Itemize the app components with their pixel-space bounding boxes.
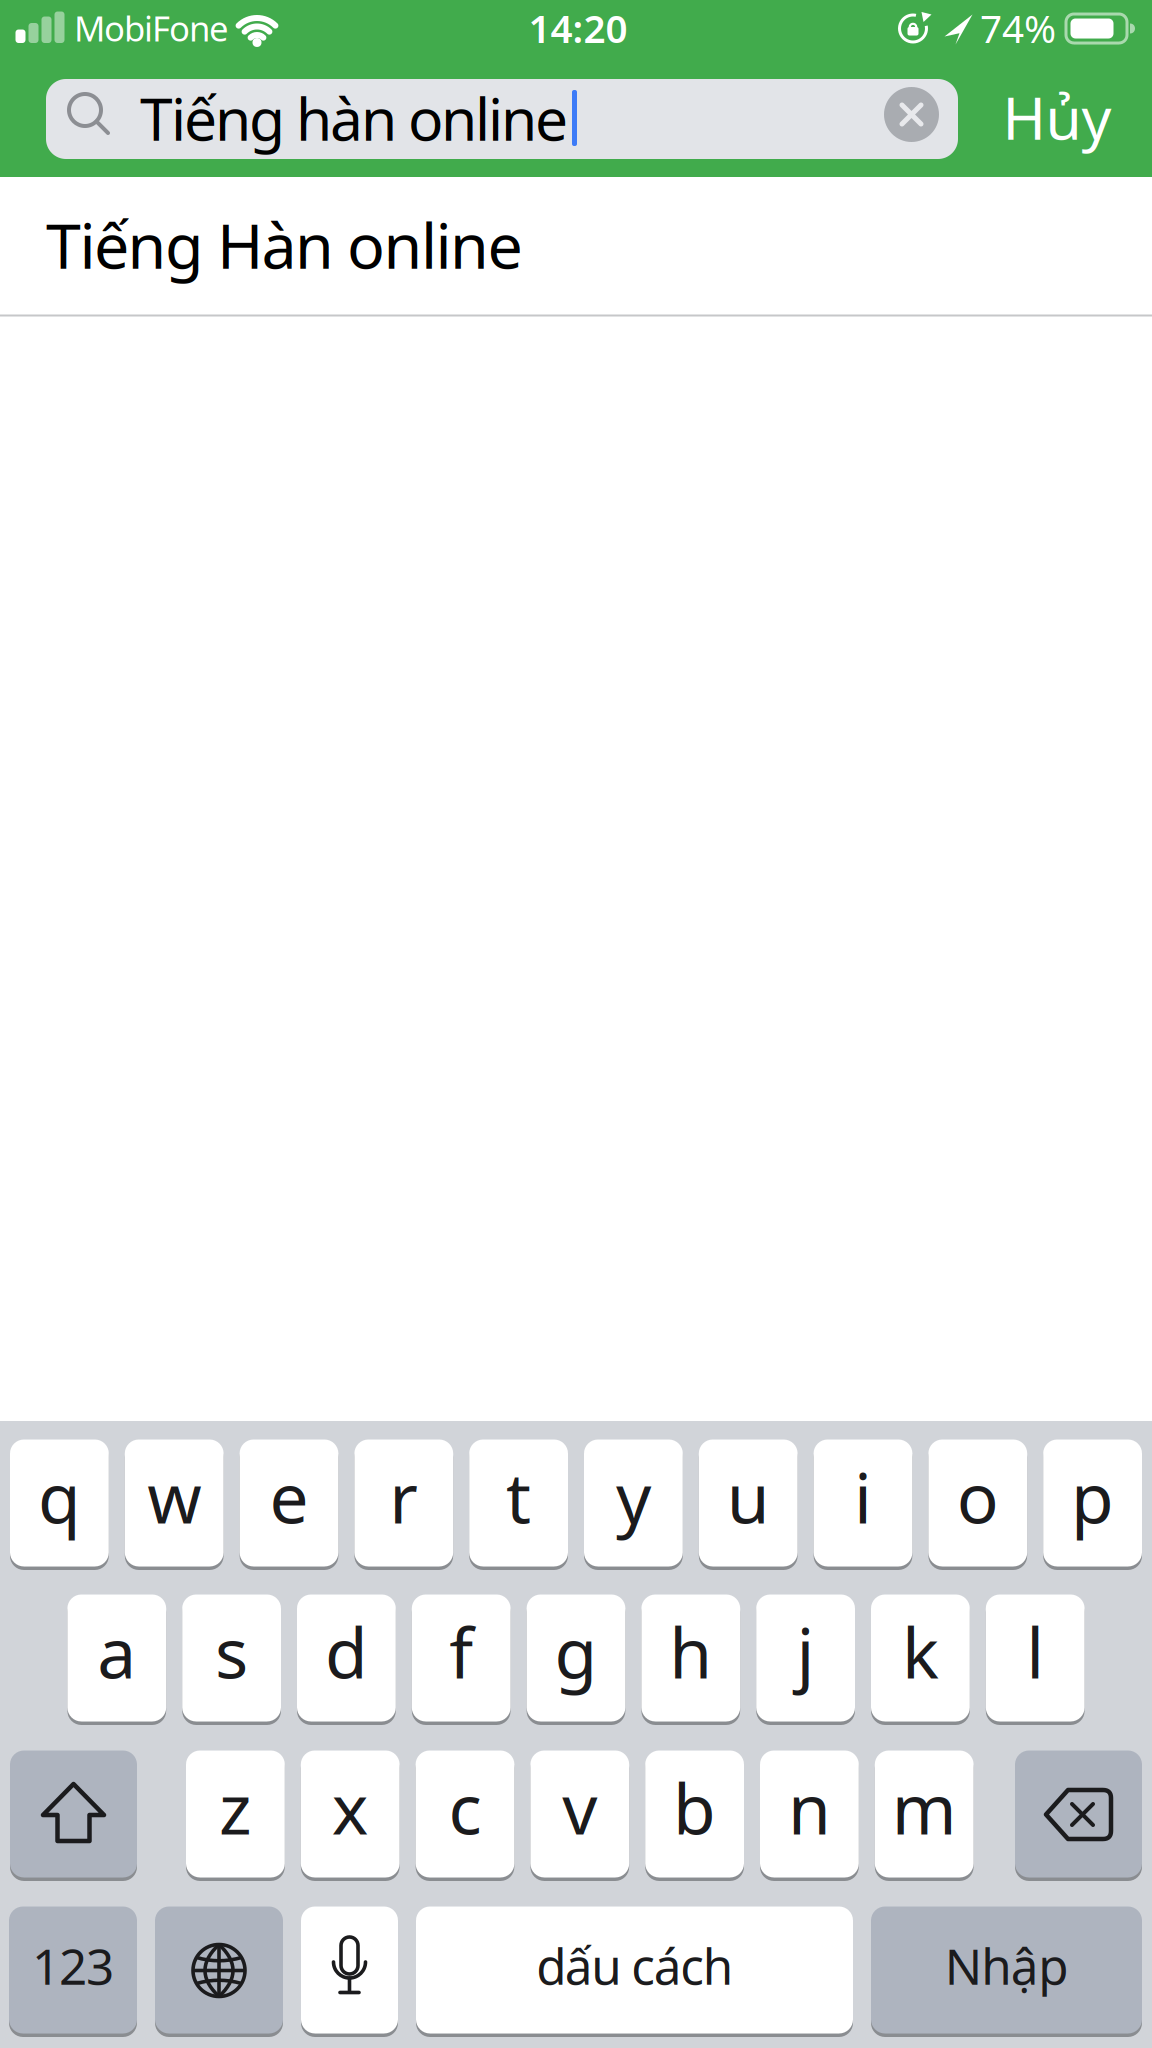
staticText: r — [389, 1450, 418, 1543]
button[interactable]: r — [354, 1440, 453, 1567]
button[interactable]: t — [469, 1440, 568, 1567]
staticText: y — [616, 1450, 651, 1543]
staticText: 123 — [32, 1933, 114, 1998]
staticText: g — [554, 1605, 597, 1698]
button[interactable]: y — [584, 1440, 683, 1567]
staticText: dấu cách — [536, 1933, 733, 1998]
button[interactable]: dấu cách — [416, 1907, 853, 2034]
staticText: i — [854, 1450, 872, 1543]
staticText: s — [215, 1605, 248, 1698]
staticText: l — [1026, 1605, 1044, 1698]
button[interactable]: Delete — [1015, 1751, 1142, 1878]
button[interactable]: j — [756, 1595, 855, 1722]
button[interactable]: c — [416, 1751, 514, 1878]
staticText: q — [38, 1450, 81, 1543]
button[interactable]: f — [412, 1595, 511, 1722]
staticText: o — [957, 1450, 999, 1543]
staticText: z — [219, 1761, 252, 1854]
staticText: h — [669, 1605, 712, 1698]
button[interactable]: Hủy — [967, 72, 1147, 162]
staticText: Tiếng Hàn online — [46, 203, 522, 286]
button[interactable]: n — [760, 1751, 859, 1878]
button[interactable]: w — [125, 1440, 224, 1567]
button[interactable]: o — [928, 1440, 1027, 1567]
button[interactable]: 123 — [9, 1907, 137, 2034]
button[interactable]: s — [182, 1595, 281, 1722]
button[interactable]: Shift — [10, 1751, 137, 1878]
staticText: p — [1071, 1450, 1114, 1543]
button[interactable]: l — [986, 1595, 1085, 1722]
button[interactable]: Nhập — [871, 1907, 1142, 2034]
staticText: w — [147, 1450, 201, 1543]
button[interactable]: Dictation — [301, 1907, 398, 2034]
staticText: 14:20 — [528, 2, 627, 54]
staticText: Hủy — [1002, 78, 1111, 156]
button[interactable]: e — [240, 1440, 338, 1567]
staticText: x — [332, 1761, 369, 1854]
button[interactable]: h — [641, 1595, 740, 1722]
button[interactable]: i — [814, 1440, 912, 1567]
staticText: c — [448, 1761, 481, 1854]
button[interactable]: v — [530, 1751, 629, 1878]
button[interactable]: u — [699, 1440, 798, 1567]
staticText: a — [97, 1605, 136, 1698]
button[interactable]: Search — [46, 79, 958, 159]
staticText: v — [562, 1761, 597, 1854]
button[interactable]: b — [645, 1751, 744, 1878]
staticText: m — [892, 1761, 957, 1854]
button[interactable]: m — [875, 1751, 974, 1878]
button[interactable]: g — [527, 1595, 625, 1722]
staticText: Tiếng hàn online — [140, 79, 568, 157]
staticText: u — [727, 1450, 770, 1543]
button[interactable]: x — [301, 1751, 400, 1878]
staticText: e — [269, 1450, 308, 1543]
button[interactable]: q — [10, 1440, 109, 1567]
button[interactable]: a — [67, 1595, 166, 1722]
staticText: n — [788, 1761, 831, 1854]
staticText: b — [673, 1761, 716, 1854]
staticText: Nhập — [945, 1933, 1068, 1998]
staticText: k — [902, 1605, 939, 1698]
button[interactable]: p — [1043, 1440, 1142, 1567]
staticText: MobiFone — [74, 5, 229, 51]
staticText: j — [797, 1605, 815, 1698]
button[interactable]: Next keyboard — [155, 1907, 283, 2034]
staticText: 74% — [980, 2, 1056, 54]
button[interactable]: Tiếng Hàn online — [0, 177, 1152, 314]
staticText: t — [506, 1450, 531, 1543]
staticText: d — [325, 1605, 368, 1698]
staticText: f — [449, 1605, 473, 1698]
button[interactable]: Clear text — [883, 86, 939, 142]
button[interactable]: d — [297, 1595, 396, 1722]
button[interactable]: k — [871, 1595, 970, 1722]
button[interactable]: z — [186, 1751, 285, 1878]
